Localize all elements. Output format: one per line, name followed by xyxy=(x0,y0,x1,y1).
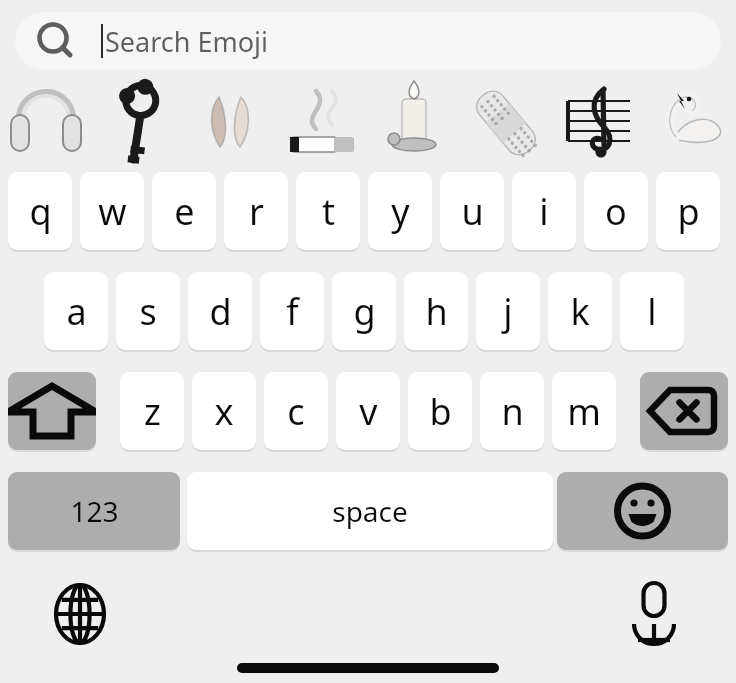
button[interactable]: w xyxy=(80,172,144,250)
button[interactable]: Musical score emoji xyxy=(552,85,644,161)
button[interactable]: n xyxy=(480,372,544,450)
button[interactable]: h xyxy=(404,272,468,350)
button[interactable]: Candle emoji xyxy=(368,85,460,161)
staticText: l xyxy=(647,287,657,336)
button[interactable]: Backspace xyxy=(640,372,728,450)
button[interactable]: v xyxy=(336,372,400,450)
button[interactable]: q xyxy=(8,172,72,250)
staticText: p xyxy=(677,187,700,236)
staticText: g xyxy=(353,287,376,336)
button[interactable]: j xyxy=(476,272,540,350)
staticText: v xyxy=(359,387,378,436)
button[interactable]: Cigarette emoji xyxy=(276,85,368,161)
button[interactable]: space xyxy=(187,472,553,550)
button[interactable]: c xyxy=(264,372,328,450)
staticText: a xyxy=(66,287,87,336)
button[interactable]: Ballet shoes emoji xyxy=(184,85,276,161)
staticText: 123 xyxy=(70,492,119,530)
button[interactable]: o xyxy=(584,172,648,250)
staticText: j xyxy=(503,287,513,336)
button[interactable]: y xyxy=(368,172,432,250)
button[interactable]: Emoji keyboard xyxy=(557,472,728,550)
staticText: m xyxy=(567,387,601,436)
staticText: o xyxy=(605,187,627,236)
button[interactable]: m xyxy=(552,372,616,450)
staticText: r xyxy=(249,187,264,236)
staticText: space xyxy=(332,492,408,530)
button[interactable]: Swan emoji xyxy=(644,85,736,161)
staticText: n xyxy=(501,387,524,436)
staticText: h xyxy=(425,287,448,336)
button[interactable]: k xyxy=(548,272,612,350)
button[interactable]: Headphones emoji xyxy=(0,85,92,161)
button[interactable]: x xyxy=(192,372,256,450)
staticText: x xyxy=(214,387,234,436)
button[interactable]: z xyxy=(120,372,184,450)
button[interactable]: b xyxy=(408,372,472,450)
button[interactable]: a xyxy=(44,272,108,350)
staticText: s xyxy=(139,287,157,336)
staticText: c xyxy=(287,387,305,436)
staticText: e xyxy=(174,187,195,236)
button[interactable]: r xyxy=(224,172,288,250)
staticText: q xyxy=(29,187,52,236)
staticText: k xyxy=(570,287,590,336)
staticText: w xyxy=(98,187,127,236)
staticText: i xyxy=(539,187,549,236)
staticText: f xyxy=(286,287,299,336)
staticText: z xyxy=(144,387,161,436)
button[interactable]: Dictation xyxy=(622,582,686,646)
staticText: d xyxy=(209,287,232,336)
button[interactable]: i xyxy=(512,172,576,250)
button[interactable]: l xyxy=(620,272,684,350)
staticText: u xyxy=(461,187,484,236)
button[interactable]: e xyxy=(152,172,216,250)
staticText: y xyxy=(391,187,410,236)
button[interactable]: d xyxy=(188,272,252,350)
staticText: t xyxy=(322,187,335,236)
button[interactable]: u xyxy=(440,172,504,250)
button[interactable]: Next keyboard xyxy=(48,582,112,646)
button[interactable]: Adhesive bandage emoji xyxy=(460,85,552,161)
button[interactable]: g xyxy=(332,272,396,350)
button[interactable]: 123 xyxy=(8,472,180,550)
button[interactable]: p xyxy=(656,172,720,250)
button[interactable]: t xyxy=(296,172,360,250)
button[interactable]: Search Emoji xyxy=(15,12,721,70)
button[interactable]: f xyxy=(260,272,324,350)
staticText: b xyxy=(429,387,452,436)
button[interactable]: Shift xyxy=(8,372,96,450)
button[interactable]: s xyxy=(116,272,180,350)
staticText: Search Emoji xyxy=(105,23,268,60)
button[interactable]: Key emoji xyxy=(92,85,184,161)
